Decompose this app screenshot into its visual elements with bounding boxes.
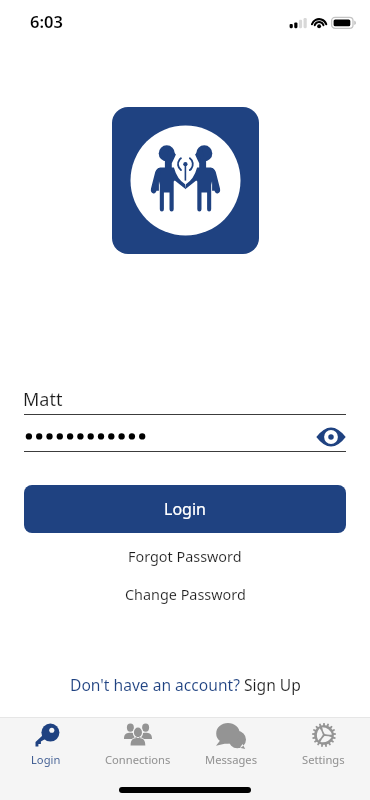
staticText: Forgot Password [128, 547, 242, 567]
staticText: Settings [302, 752, 345, 767]
staticText: 6:03 [30, 10, 63, 32]
button[interactable]: Connections [92, 717, 184, 773]
button[interactable]: Forgot Password [114, 544, 256, 570]
staticText: Login [164, 498, 206, 520]
staticText: Matt [23, 387, 63, 412]
button[interactable]: Don't have an account? Sign Up [60, 670, 311, 699]
button[interactable]: Login [24, 485, 346, 533]
staticText: Login [31, 752, 61, 767]
button[interactable]: Messages [184, 717, 277, 773]
button[interactable]: Change Password [111, 582, 260, 608]
staticText: Connections [105, 752, 171, 767]
staticText: Messages [205, 752, 257, 767]
staticText: Change Password [125, 585, 246, 605]
button[interactable]: Login [0, 717, 92, 773]
button[interactable]: Show password [313, 419, 349, 455]
button[interactable]: Settings [277, 717, 370, 773]
staticText: Don't have an account? Sign Up [70, 674, 301, 695]
